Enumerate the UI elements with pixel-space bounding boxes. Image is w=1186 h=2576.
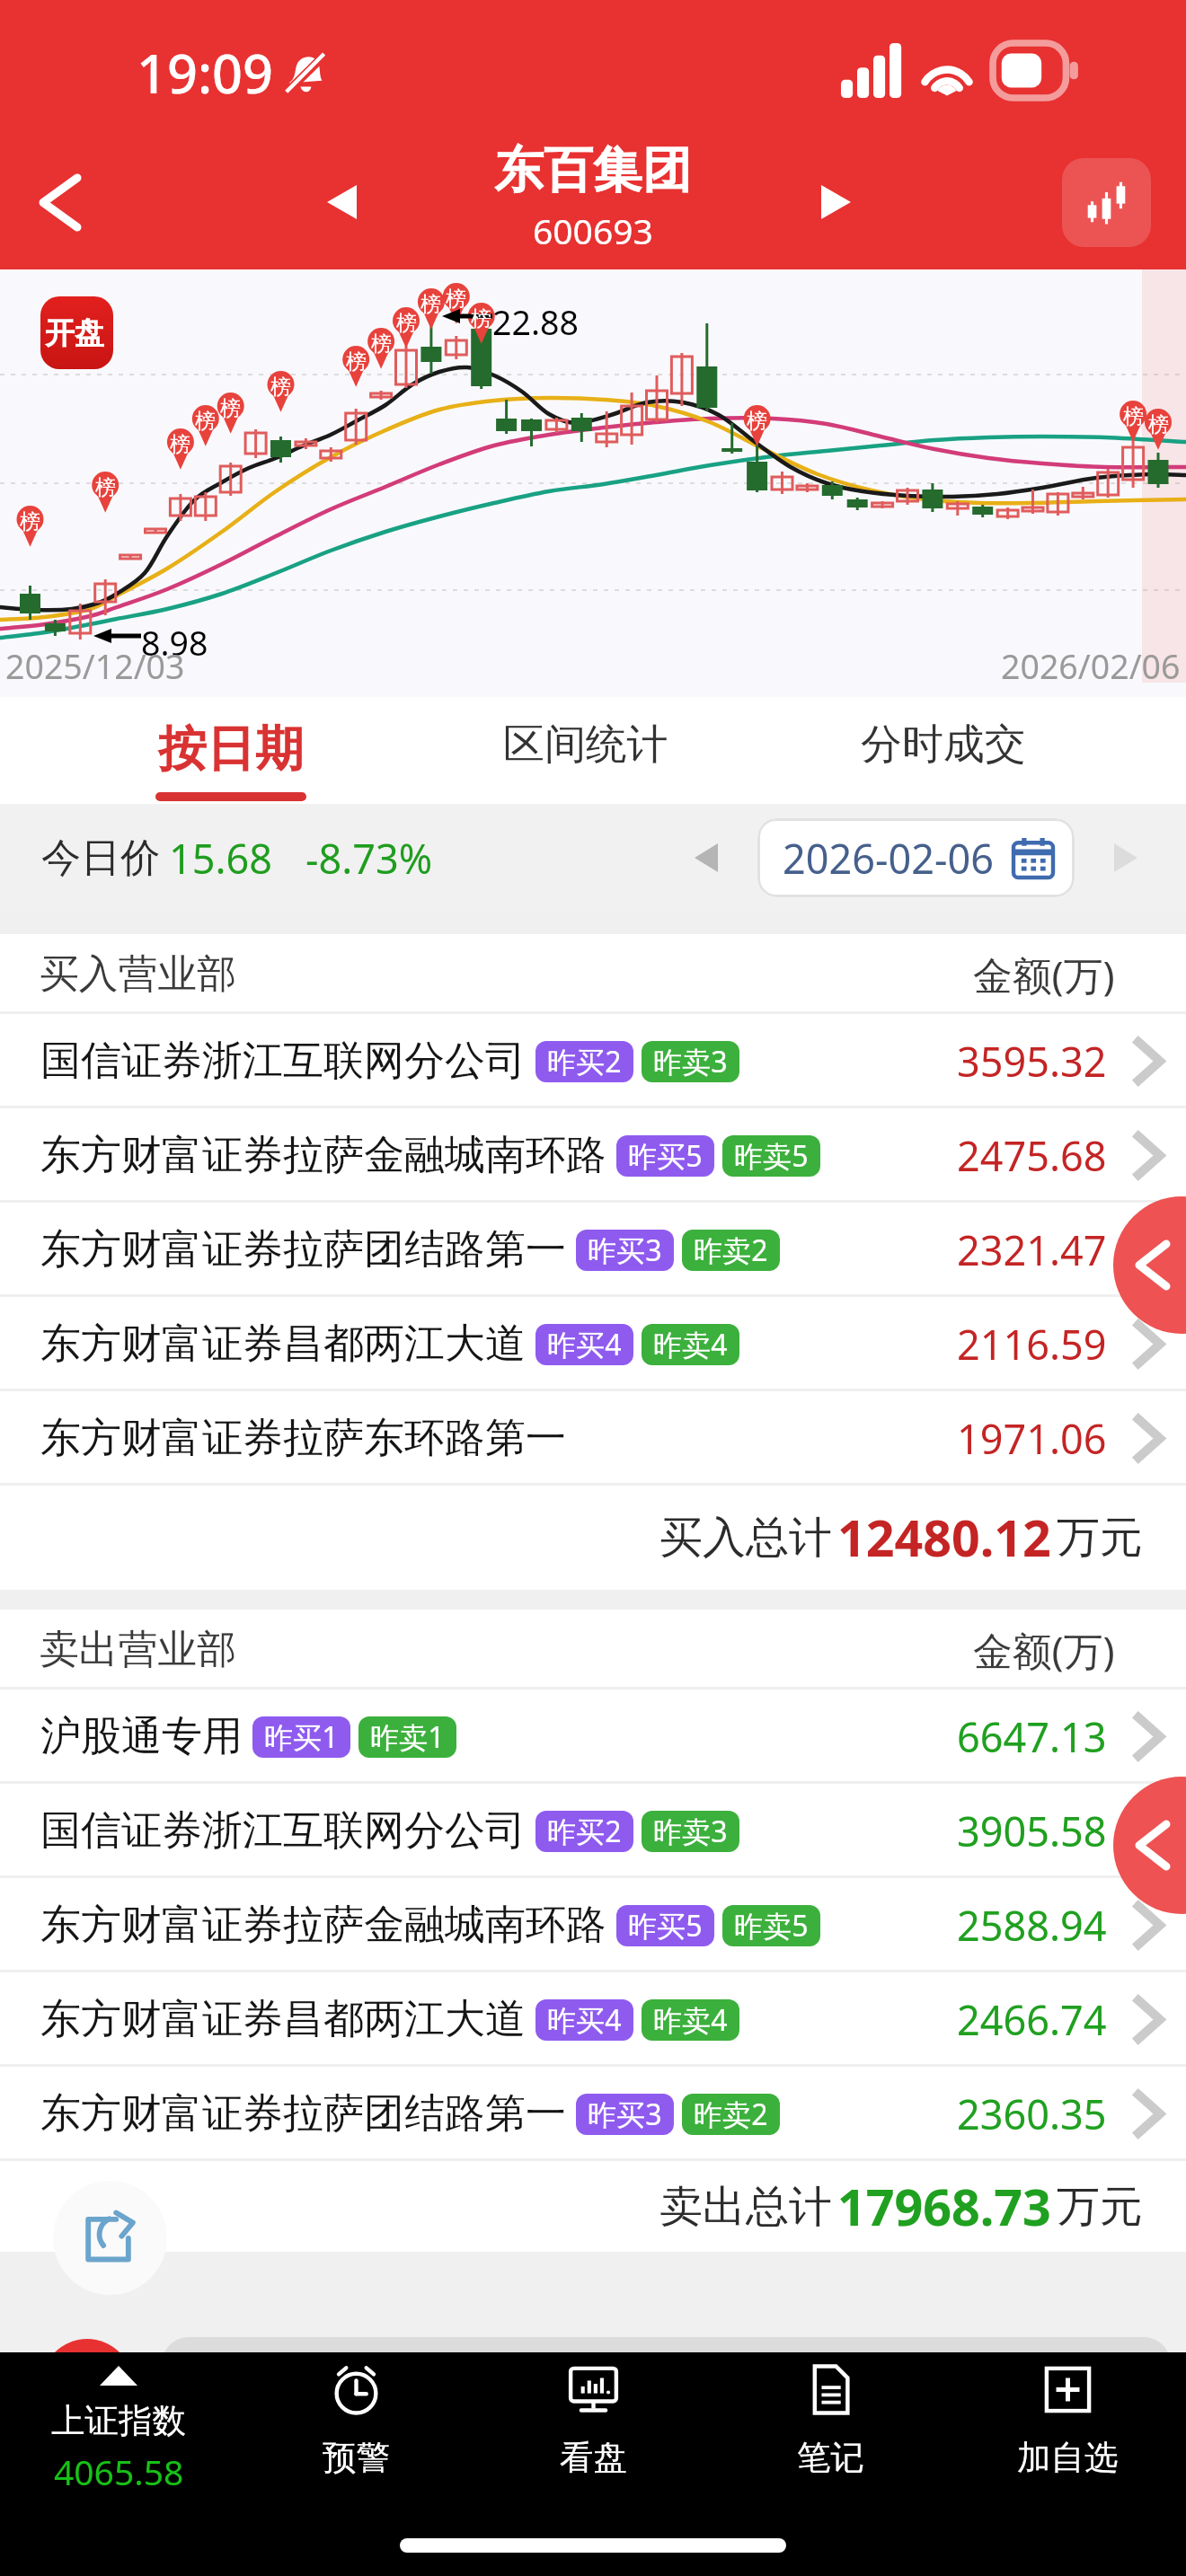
button[interactable]: 按日期: [141, 697, 321, 804]
button[interactable]: 东方财富证券拉萨团结路第一: [0, 2067, 1186, 2161]
staticText: 榜: [747, 408, 767, 434]
button[interactable]: 国信证券浙江互联网分公司: [0, 1014, 1186, 1108]
button[interactable]: 预警: [237, 2352, 474, 2488]
staticText: 加自选: [1017, 2437, 1119, 2479]
button[interactable]: Next day: [1085, 817, 1166, 898]
button[interactable]: 东方财富证券拉萨东环路第一: [0, 1391, 1186, 1486]
staticText: 东方财富证券拉萨团结路第一: [40, 1224, 566, 1275]
staticText: 国信证券浙江互联网分公司: [40, 1036, 526, 1087]
staticText: 按日期: [158, 719, 304, 780]
button[interactable]: Back: [20, 162, 101, 243]
staticText: 榜: [471, 305, 491, 331]
staticText: 昨买4: [547, 1325, 622, 1364]
button[interactable]: 东方财富证券拉萨团结路第一: [0, 1203, 1186, 1297]
button[interactable]: 国信证券浙江互联网分公司: [0, 1784, 1186, 1878]
staticText: 今日价: [41, 834, 161, 884]
button[interactable]: 2026-02-06: [757, 818, 1075, 897]
button[interactable]: Collapse panel: [1113, 1777, 1186, 1914]
staticText: 国信证券浙江互联网分公司: [40, 1805, 526, 1857]
staticText: 东方财富证券昌都两江大道: [40, 1319, 526, 1370]
button[interactable]: 区间统计: [482, 697, 689, 804]
staticText: 上证指数: [51, 2400, 186, 2442]
button[interactable]: K-line chart: [1062, 158, 1151, 247]
staticText: 2026/02/06: [1001, 643, 1181, 689]
staticText: 昨买1: [264, 1717, 339, 1757]
staticText: 3905.58: [957, 1804, 1107, 1858]
staticText: 2116.59: [957, 1317, 1107, 1372]
button[interactable]: 东方财富证券昌都两江大道: [0, 1297, 1186, 1391]
button[interactable]: 沪股通专用: [0, 1689, 1186, 1784]
staticText: 东方财富证券拉萨金融城南环路: [40, 1130, 606, 1181]
staticText: 榜: [195, 408, 216, 434]
button[interactable]: Previous day: [666, 817, 747, 898]
staticText: 2466.74: [957, 1992, 1107, 2047]
staticText: 榜: [170, 431, 190, 457]
staticText: 榜: [371, 331, 392, 357]
staticText: 8.98: [141, 620, 208, 666]
staticText: 榜: [1123, 403, 1144, 429]
staticText: 榜: [346, 348, 367, 375]
staticText: 榜: [1148, 411, 1169, 437]
staticText: 昨卖4: [653, 1325, 728, 1364]
staticText: 2321.47: [957, 1222, 1107, 1277]
staticText: 榜: [446, 286, 466, 312]
staticText: -8.73%: [305, 831, 433, 886]
button[interactable]: 东方财富证券拉萨金融城南环路: [0, 1878, 1186, 1972]
staticText: 分时成交: [861, 719, 1026, 771]
button[interactable]: Next stock: [816, 175, 855, 229]
staticText: 3595.32: [957, 1034, 1107, 1089]
staticText: 22.88: [492, 299, 579, 345]
staticText: 金额(万): [973, 1623, 1115, 1677]
button[interactable]: 上证指数: [0, 2352, 237, 2488]
staticText: 榜: [95, 474, 116, 500]
staticText: 东方财富证券拉萨团结路第一: [40, 2088, 566, 2139]
staticText: 2360.35: [957, 2086, 1107, 2141]
button[interactable]: 看盘: [474, 2352, 712, 2488]
staticText: 昨卖4: [653, 2000, 728, 2040]
button[interactable]: 分时成交: [840, 697, 1047, 804]
staticText: 看盘: [560, 2437, 627, 2479]
staticText: 榜: [396, 310, 417, 336]
staticText: 买入总计: [659, 1511, 832, 1565]
staticText: 卖出总计: [659, 2180, 832, 2234]
staticText: 榜: [420, 291, 441, 317]
button[interactable]: Collapse panel: [1113, 1196, 1186, 1334]
staticText: 1971.06: [957, 1411, 1107, 1466]
staticText: 东方财富证券拉萨金融城南环路: [40, 1900, 606, 1951]
staticText: 昨买2: [547, 1812, 622, 1851]
staticText: 昨买4: [547, 2000, 622, 2040]
staticText: 19:09: [137, 37, 274, 110]
staticText: 12480.12: [837, 1504, 1051, 1572]
button[interactable]: Previous stock: [322, 175, 361, 229]
staticText: 沪股通专用: [40, 1711, 243, 1762]
staticText: 15.68: [169, 831, 273, 886]
staticText: 昨卖3: [653, 1042, 728, 1081]
staticText: 4065.58: [54, 2448, 184, 2488]
staticText: 昨卖3: [653, 1812, 728, 1851]
staticText: 东方财富证券昌都两江大道: [40, 1994, 526, 2045]
staticText: 2475.68: [957, 1128, 1107, 1183]
staticText: 开盘: [45, 314, 110, 352]
staticText: 2025/12/03: [5, 643, 185, 689]
staticText: 昨卖2: [694, 1231, 768, 1270]
staticText: 卖出营业部: [40, 1625, 236, 1674]
staticText: 昨卖1: [370, 1717, 445, 1757]
staticText: 昨买5: [628, 1906, 703, 1945]
button[interactable]: 东方财富证券昌都两江大道: [0, 1972, 1186, 2067]
button[interactable]: Share: [53, 2181, 167, 2295]
staticText: 东方财富证券拉萨东环路第一: [40, 1413, 566, 1464]
staticText: 2026-02-06: [783, 831, 994, 886]
staticText: 金额(万): [973, 948, 1115, 1001]
staticText: 昨卖5: [734, 1906, 809, 1945]
staticText: 区间统计: [503, 719, 668, 771]
staticText: 万元: [1057, 1511, 1143, 1565]
staticText: 昨卖5: [734, 1136, 809, 1176]
staticText: 昨卖2: [694, 2095, 768, 2134]
button[interactable]: 加自选: [949, 2352, 1186, 2488]
button[interactable]: 东方财富证券拉萨金融城南环路: [0, 1108, 1186, 1203]
staticText: 昨买2: [547, 1042, 622, 1081]
staticText: 笔记: [797, 2437, 864, 2479]
staticText: 榜: [20, 508, 40, 534]
staticText: 昨买3: [588, 2095, 662, 2134]
button[interactable]: 笔记: [712, 2352, 949, 2488]
